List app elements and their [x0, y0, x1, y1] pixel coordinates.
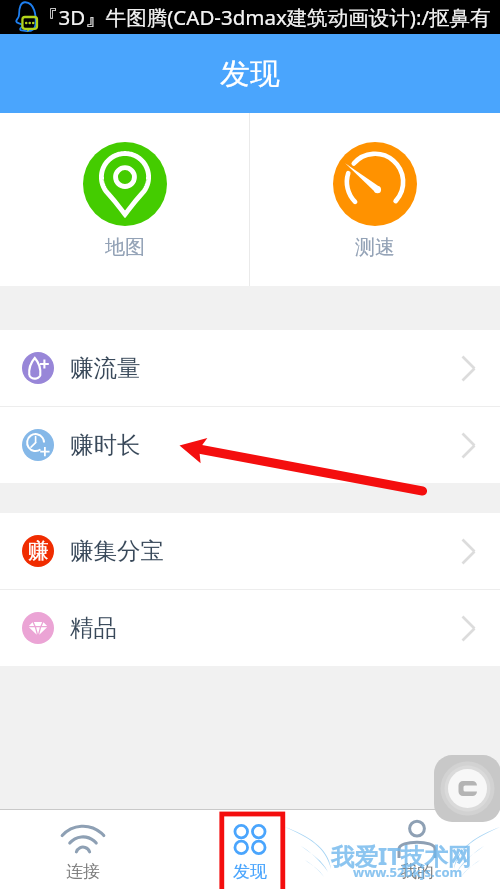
staticText: 测速 — [355, 235, 395, 260]
staticText: 精品 — [70, 613, 117, 643]
staticText: 赚集分宝 — [70, 536, 164, 566]
button[interactable]: 发现 — [166, 810, 333, 889]
staticText: 赚 — [28, 538, 49, 564]
staticText: 地图 — [105, 235, 145, 260]
button[interactable]: 测速 — [250, 113, 500, 286]
button[interactable]: 地图 — [0, 113, 249, 286]
button[interactable]: 连接 — [0, 810, 166, 889]
button[interactable]: 精品 — [0, 590, 500, 666]
staticText: 赚时长 — [70, 430, 141, 460]
staticText: 赚流量 — [70, 353, 141, 383]
staticText: 我的 — [400, 861, 434, 882]
button[interactable]: 我的 — [333, 810, 500, 889]
staticText: 发现 — [220, 55, 280, 93]
button[interactable]: 赚 — [0, 513, 500, 589]
staticText: 连接 — [66, 861, 100, 882]
staticText: www.52bkjs.com — [353, 863, 463, 881]
button[interactable]: 赚流量 — [0, 330, 500, 406]
button[interactable]: 赚时长 — [0, 407, 500, 483]
staticText: 我爱IT技术网 — [331, 840, 472, 872]
staticText: 『3D』牛图腾(CAD-3dmax建筑动画设计):/抠鼻有 — [38, 3, 491, 31]
staticText: 发现 — [233, 861, 267, 882]
